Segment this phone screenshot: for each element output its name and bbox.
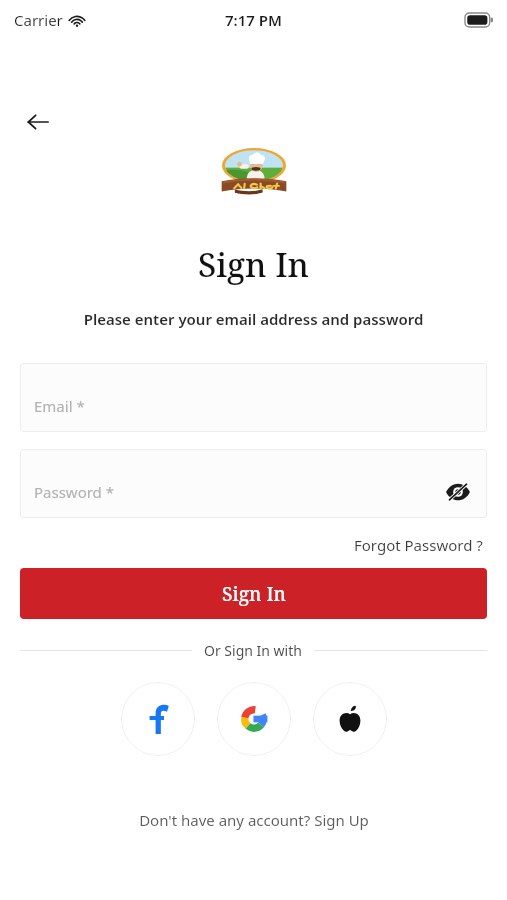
button[interactable]: Sign in with Google (217, 682, 291, 756)
button[interactable]: Email * (20, 363, 487, 432)
staticText: 7:17 PM (225, 10, 282, 30)
button[interactable]: Password * (20, 449, 487, 518)
button[interactable]: Forgot Password ? (350, 531, 487, 559)
button[interactable]: Don't have any account? Sign Up (133, 804, 375, 836)
staticText: Don't have any account? Sign Up (139, 810, 369, 830)
button[interactable]: Show password (443, 477, 473, 507)
button[interactable]: Sign in with Facebook (121, 682, 195, 756)
staticText: Sign In (0, 242, 507, 287)
button[interactable]: Sign In (20, 568, 487, 619)
staticText: Please enter your email address and pass… (0, 309, 507, 329)
staticText: Carrier (14, 10, 63, 30)
staticText: Sign In (222, 581, 286, 607)
staticText: Email * (34, 396, 85, 416)
staticText: Or Sign In with (204, 641, 302, 660)
button[interactable]: Sign in with Apple (313, 682, 387, 756)
button[interactable]: Back (18, 102, 58, 142)
staticText: Password * (34, 482, 115, 502)
staticText: Forgot Password ? (354, 535, 483, 555)
